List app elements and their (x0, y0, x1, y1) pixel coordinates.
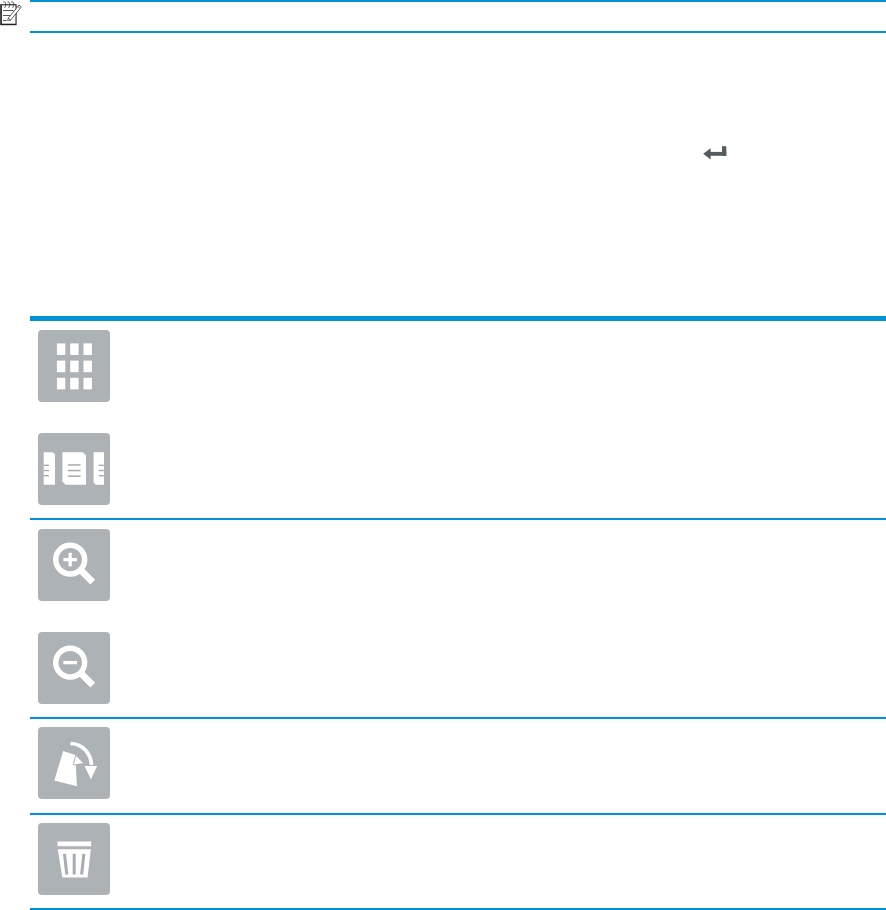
button[interactable]: Keypad (38, 330, 110, 402)
button[interactable]: Rotate (38, 727, 110, 799)
button[interactable]: Enter (698, 138, 732, 168)
button[interactable]: Zoom out (38, 632, 110, 704)
button[interactable]: Pages (38, 433, 110, 505)
button[interactable]: Zoom in (38, 529, 110, 601)
button[interactable]: Edit note (0, 0, 22, 28)
button[interactable]: Delete (38, 823, 110, 895)
